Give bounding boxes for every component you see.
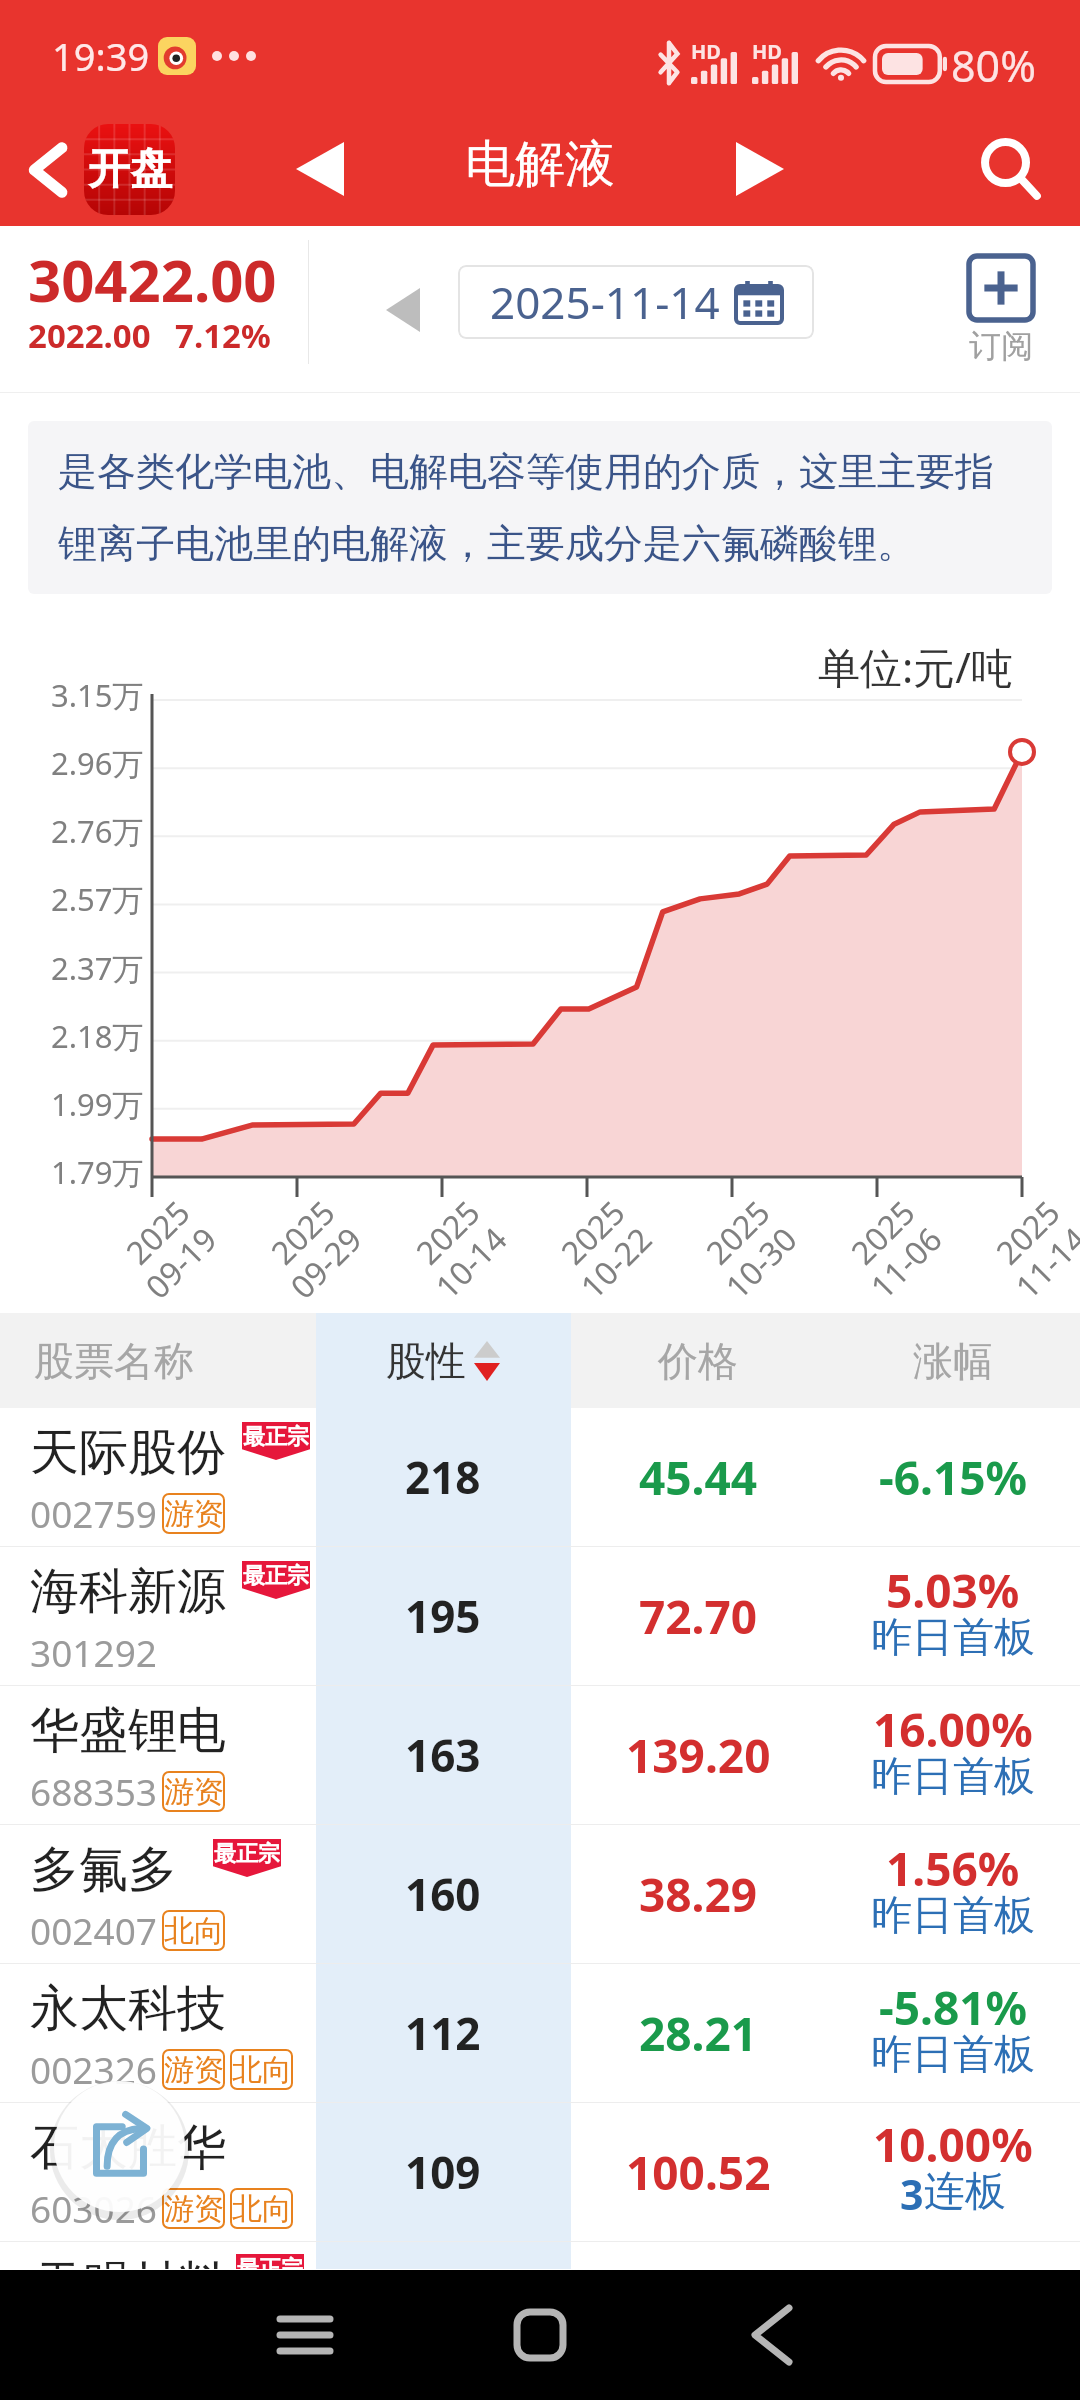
staticText: 109 xyxy=(405,2142,481,2202)
staticText: 多氟多 xyxy=(30,1839,177,1901)
staticText: 最正宗 xyxy=(237,2255,303,2269)
staticText: 7.12% xyxy=(175,313,271,358)
staticText: 游资 xyxy=(164,2190,224,2228)
staticText: 订阅 xyxy=(969,326,1033,366)
staticText: 1.99万 xyxy=(51,1083,144,1125)
staticText: 10.00% xyxy=(873,2113,1033,2176)
staticText: 电解液 xyxy=(465,133,615,196)
staticText: 163 xyxy=(405,1725,481,1785)
staticText: 218 xyxy=(405,1447,481,1507)
staticText: 2025 10-22 xyxy=(462,1191,660,1390)
button[interactable]: Back xyxy=(26,124,175,215)
staticText: 38.29 xyxy=(639,1863,758,1926)
staticText: 2022.00 xyxy=(28,313,151,358)
staticText: 603026 xyxy=(30,2183,157,2233)
button[interactable]: 2025-11-14 xyxy=(458,265,814,339)
staticText: 天际股份 xyxy=(30,1422,226,1484)
staticText: 2025 11-14 xyxy=(897,1191,1080,1390)
staticText: 688353 xyxy=(30,1766,157,1816)
staticText: 80% xyxy=(951,36,1036,95)
staticText: 石大胜华 xyxy=(30,2117,226,2179)
staticText: 是各类化学电池、电解电容等使用的介质，这里主要指 锂离子电池里的电解液，主要成分… xyxy=(58,447,994,568)
staticText: 天赐材料 xyxy=(34,2254,226,2269)
staticText: 28.21 xyxy=(639,2002,758,2065)
staticText: 3.15万 xyxy=(51,674,144,716)
staticText: 昨日首板 xyxy=(871,2029,1035,2081)
staticText: 2025 10-14 xyxy=(317,1191,515,1390)
staticText: 北向 xyxy=(232,2051,292,2089)
staticText: 昨日首板 xyxy=(871,1612,1035,1664)
staticText: 301292 xyxy=(30,1627,157,1677)
staticText: 139.20 xyxy=(626,1724,771,1787)
staticText: 最正宗 xyxy=(214,1840,280,1868)
staticText: 2025 09-29 xyxy=(172,1191,370,1390)
staticText: 永太科技 xyxy=(30,1978,226,2040)
button[interactable]: 永太科技 xyxy=(0,1964,1080,2102)
staticText: 002407 xyxy=(30,1905,157,1955)
button[interactable]: Recents xyxy=(245,2285,365,2385)
staticText: 2.18万 xyxy=(51,1015,144,1057)
staticText: 游资 xyxy=(164,2051,224,2089)
staticText: 2025 10-30 xyxy=(607,1191,805,1390)
staticText: 2025-11-14 xyxy=(490,272,720,332)
button[interactable]: 订阅 xyxy=(940,256,1062,366)
staticText: 5.03% xyxy=(886,1559,1020,1622)
button[interactable]: 华盛锂电 xyxy=(0,1686,1080,1824)
staticText: 3 xyxy=(900,2166,924,2222)
staticText: 北向 xyxy=(232,2190,292,2228)
staticText: -5.81% xyxy=(879,1976,1028,2039)
button[interactable]: Search xyxy=(970,129,1050,209)
button[interactable]: Share xyxy=(54,2081,185,2212)
staticText: 单位:元/吨 xyxy=(818,638,1013,695)
button[interactable]: 多氟多 xyxy=(0,1825,1080,1963)
staticText: 2.57万 xyxy=(51,878,144,920)
staticText: 112 xyxy=(405,2003,481,2063)
button[interactable]: Next xyxy=(720,126,800,212)
staticText: 最正宗 xyxy=(243,1562,309,1590)
staticText: 华盛锂电 xyxy=(30,1700,226,1762)
staticText: HD xyxy=(691,38,721,65)
staticText: -6.15% xyxy=(879,1446,1028,1509)
staticText: 2.76万 xyxy=(51,810,144,852)
staticText: 30422.00 xyxy=(28,240,277,319)
staticText: 19:39 xyxy=(52,30,150,82)
staticText: 2.37万 xyxy=(51,947,144,989)
staticText: 游资 xyxy=(164,1495,224,1533)
staticText: 72.70 xyxy=(639,1585,758,1648)
staticText: 价格 xyxy=(658,1336,738,1386)
staticText: 2.96万 xyxy=(51,742,144,784)
staticText: 昨日首板 xyxy=(871,1751,1035,1803)
button[interactable]: Home xyxy=(480,2285,600,2385)
button[interactable]: Back xyxy=(712,2285,832,2385)
staticText: 开盘 xyxy=(88,143,172,196)
staticText: 1.79万 xyxy=(51,1151,144,1193)
staticText: 002759 xyxy=(30,1488,157,1538)
staticText: 195 xyxy=(405,1586,481,1646)
staticText: HD xyxy=(752,38,782,65)
button[interactable]: Previous xyxy=(280,126,360,212)
staticText: 16.00% xyxy=(873,1698,1033,1761)
button[interactable]: 海科新源 xyxy=(0,1547,1080,1685)
staticText: 45.44 xyxy=(639,1446,758,1509)
staticText: 2025 09-19 xyxy=(27,1191,225,1390)
staticText: 股性 xyxy=(386,1336,466,1386)
staticText: 昨日首板 xyxy=(871,1890,1035,1942)
staticText: 连板 xyxy=(924,2166,1006,2218)
staticText: 游资 xyxy=(164,1773,224,1811)
staticText: 160 xyxy=(405,1864,481,1924)
staticText: 100.52 xyxy=(626,2141,771,2204)
staticText: 002326 xyxy=(30,2044,157,2094)
button[interactable]: 石大胜华 xyxy=(0,2103,1080,2241)
staticText: 2025 11-06 xyxy=(752,1191,950,1390)
staticText: 股票名称 xyxy=(34,1336,194,1386)
staticText: 涨幅 xyxy=(913,1336,993,1386)
staticText: 北向 xyxy=(164,1912,224,1950)
staticText: 最正宗 xyxy=(243,1423,309,1451)
staticText: 海科新源 xyxy=(30,1561,226,1623)
staticText: 1.56% xyxy=(886,1837,1020,1900)
button[interactable]: 天际股份 xyxy=(0,1408,1080,1546)
